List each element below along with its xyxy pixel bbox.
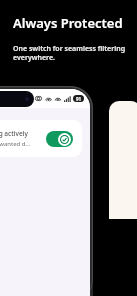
staticText: One switch for seamless filtering everyw… (13, 44, 127, 62)
button[interactable]: Blocking toggle, on (46, 131, 73, 147)
button[interactable]: Blocking actively (0, 120, 82, 157)
staticText: 91 (76, 96, 82, 102)
staticText: Always Protected (13, 14, 123, 32)
staticText: Blocking actively (0, 129, 28, 138)
staticText: Filter unwanted d… (0, 140, 31, 148)
